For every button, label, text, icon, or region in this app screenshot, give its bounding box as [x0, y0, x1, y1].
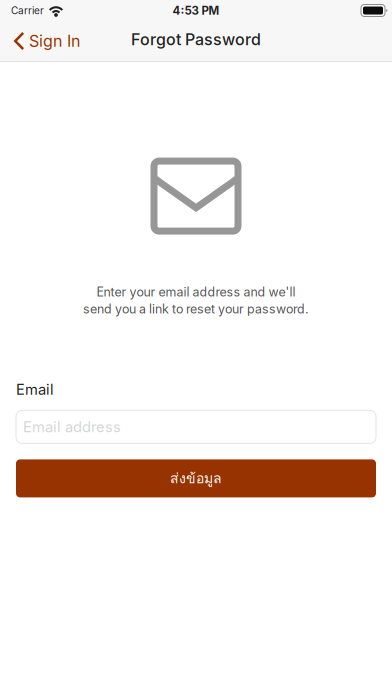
staticText: Email address — [23, 418, 121, 436]
staticText: Email — [16, 381, 54, 398]
staticText: Forgot Password — [131, 30, 261, 49]
button[interactable]: ส่งข้อมูล — [16, 459, 376, 497]
button[interactable]: Sign In — [0, 21, 90, 61]
staticText: send you a link to reset your password. — [83, 302, 309, 317]
staticText: Enter your email address and we'll — [96, 285, 295, 300]
staticText: ส่งข้อมูล — [170, 467, 222, 490]
staticText: Sign In — [29, 31, 80, 51]
staticText: Carrier — [11, 4, 44, 17]
staticText: 4:53 PM — [172, 3, 219, 17]
